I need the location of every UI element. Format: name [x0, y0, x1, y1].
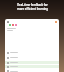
- button[interactable]: [5, 56, 59, 59]
- button[interactable]: [5, 51, 59, 54]
- button[interactable]: Menu: [7, 21, 9, 23]
- staticText: Real-time feedback for: [17, 3, 48, 7]
- button[interactable]: [5, 70, 59, 72]
- button[interactable]: [5, 65, 59, 68]
- button[interactable]: [5, 61, 59, 64]
- staticText: more efficient learning: [17, 7, 48, 11]
